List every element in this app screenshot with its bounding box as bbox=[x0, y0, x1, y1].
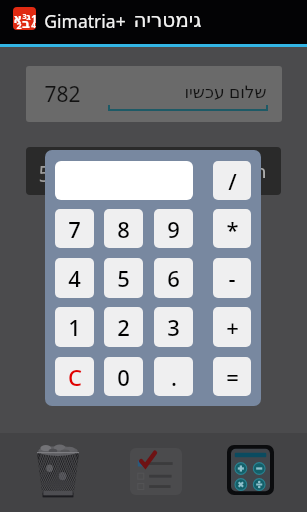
staticText: 6 bbox=[167, 263, 180, 293]
button[interactable]: א bbox=[0, 0, 307, 44]
staticText: 3 bbox=[167, 312, 180, 342]
button[interactable]: 2 bbox=[104, 307, 143, 347]
button[interactable]: - bbox=[213, 258, 251, 298]
button[interactable]: + bbox=[213, 307, 251, 347]
staticText: ח bbox=[254, 160, 267, 182]
button[interactable]: / bbox=[213, 161, 251, 200]
button[interactable]: 1 bbox=[55, 307, 94, 347]
staticText: 0 bbox=[117, 362, 130, 392]
button[interactable]: 5 bbox=[26, 147, 281, 195]
staticText: 4 bbox=[68, 263, 81, 293]
button[interactable]: 5 bbox=[104, 258, 143, 298]
staticText: / bbox=[228, 166, 237, 196]
button[interactable]: 7 bbox=[55, 209, 94, 248]
button[interactable]: 782 bbox=[26, 66, 282, 122]
staticText: C bbox=[68, 362, 82, 392]
staticText: 2 bbox=[16, 19, 22, 30]
button[interactable]: * bbox=[213, 209, 251, 248]
staticText: שלום עכשיו bbox=[184, 80, 267, 103]
button[interactable]: 4 bbox=[55, 258, 94, 298]
button[interactable]: Calculator bbox=[205, 433, 307, 512]
staticText: גימטריה bbox=[133, 8, 202, 31]
staticText: * bbox=[226, 214, 239, 244]
staticText: 1 bbox=[68, 312, 81, 342]
button[interactable]: = bbox=[213, 357, 251, 396]
staticText: 5 bbox=[117, 263, 130, 293]
staticText: 2 bbox=[117, 312, 130, 342]
button[interactable]: 0 bbox=[104, 357, 143, 396]
staticText: 7 bbox=[68, 214, 81, 244]
staticText: 5 bbox=[38, 160, 51, 189]
button[interactable]: 6 bbox=[154, 258, 193, 298]
button[interactable]: History list bbox=[103, 433, 205, 512]
button[interactable]: C bbox=[55, 357, 94, 396]
staticText: 4 bbox=[31, 19, 36, 30]
button[interactable]: . bbox=[154, 357, 193, 396]
staticText: 3 bbox=[22, 12, 27, 22]
button[interactable]: 9 bbox=[154, 209, 193, 248]
button[interactable]: 3 bbox=[154, 307, 193, 347]
staticText: - bbox=[228, 263, 236, 293]
staticText: 782 bbox=[44, 80, 81, 109]
staticText: 9 bbox=[167, 214, 180, 244]
staticText: א bbox=[13, 12, 22, 26]
staticText: ג bbox=[26, 11, 31, 23]
button[interactable] bbox=[55, 161, 193, 200]
staticText: . bbox=[171, 362, 177, 392]
staticText: 1 bbox=[31, 12, 36, 26]
button[interactable]: 8 bbox=[104, 209, 143, 248]
button[interactable]: Clear bbox=[0, 433, 103, 512]
staticText: = bbox=[226, 362, 239, 392]
staticText: Gimatria+ bbox=[44, 9, 126, 33]
staticText: 8 bbox=[117, 214, 130, 244]
staticText: + bbox=[226, 312, 239, 342]
staticText: ב bbox=[22, 16, 30, 30]
